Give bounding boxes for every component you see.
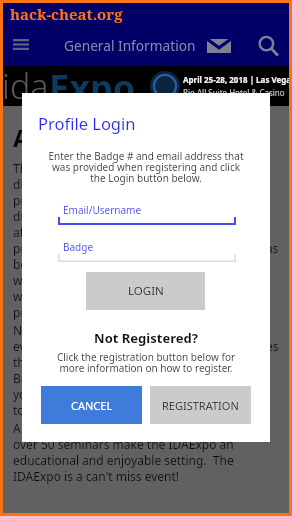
staticText: Networking opportunities are abundant an… xyxy=(13,322,279,418)
button[interactable]: Search xyxy=(252,30,284,62)
staticText: LOGIN xyxy=(128,283,164,299)
staticText: Rio All Suite Hotel & Casino xyxy=(183,87,285,98)
staticText: REGISTRATION xyxy=(162,398,239,413)
staticText: Profile Login xyxy=(38,112,136,134)
staticText: Enter the Badge # and email address that… xyxy=(48,149,244,185)
staticText: General Information xyxy=(64,36,196,55)
button[interactable]: CANCEL xyxy=(41,386,142,424)
staticText: April 25-28, 2018 | Las Vegas, NV xyxy=(183,74,292,85)
button[interactable]: Messages xyxy=(201,28,237,64)
staticText: Click the registration button below for … xyxy=(44,350,248,375)
staticText: Badge xyxy=(63,240,94,254)
staticText: Email/Username xyxy=(63,203,142,217)
staticText: Not Registered? xyxy=(22,329,270,347)
button[interactable]: LOGIN xyxy=(86,272,205,310)
staticText: Expo xyxy=(49,63,136,103)
staticText: This is the premier event for independen… xyxy=(13,160,279,320)
staticText: About IDAExpo xyxy=(13,121,193,154)
staticText: hack-cheat.org xyxy=(10,4,123,24)
staticText: CANCEL xyxy=(71,398,113,413)
staticText: ida xyxy=(2,63,49,103)
button[interactable]: Open navigation menu xyxy=(5,28,37,60)
button[interactable]: REGISTRATION xyxy=(150,386,251,424)
staticText: A trade show floor with 140 exhibitors a… xyxy=(13,420,279,484)
